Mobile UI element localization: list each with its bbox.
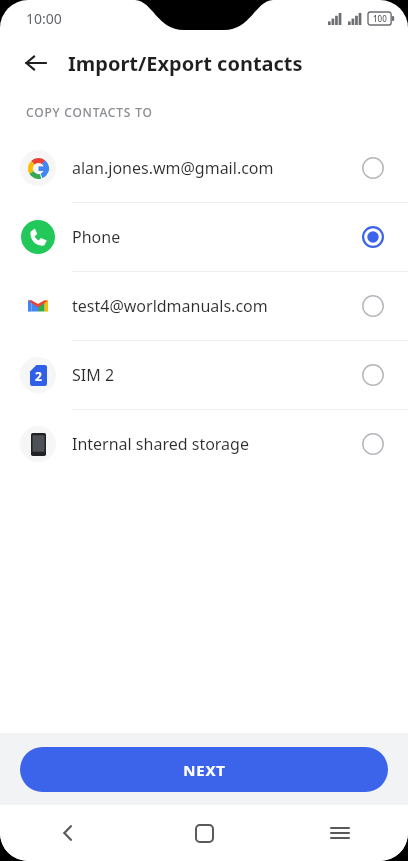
staticText: Internal shared storage — [72, 433, 360, 455]
staticText: 10:00 — [26, 9, 62, 28]
staticText: 2 — [35, 368, 42, 384]
button[interactable]: 2 — [0, 341, 408, 410]
button[interactable]: alan.jones.wm@gmail.com — [0, 134, 408, 203]
staticText: alan.jones.wm@gmail.com — [72, 157, 360, 179]
staticText: COPY CONTACTS TO — [26, 104, 153, 120]
staticText: NEXT — [183, 760, 226, 780]
staticText: Import/Export contacts — [68, 50, 303, 77]
button[interactable]: Back — [14, 41, 58, 85]
button[interactable]: test4@worldmanuals.com — [0, 272, 408, 341]
button[interactable]: Internal shared storage — [0, 410, 408, 478]
staticText: 100 — [373, 13, 387, 24]
button[interactable]: Back — [0, 805, 136, 861]
button[interactable]: Recent apps — [272, 805, 408, 861]
staticText: test4@worldmanuals.com — [72, 295, 360, 317]
button[interactable]: Home — [136, 805, 272, 861]
button[interactable]: Phone — [0, 203, 408, 272]
staticText: SIM 2 — [72, 364, 360, 386]
button[interactable]: NEXT — [20, 747, 388, 792]
staticText: Phone — [72, 226, 360, 248]
